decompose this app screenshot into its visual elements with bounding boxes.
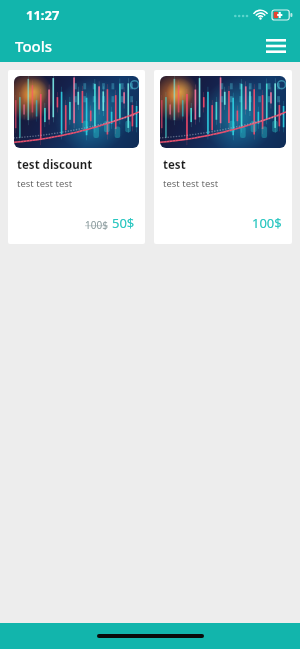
button[interactable]: test discount bbox=[8, 70, 145, 244]
button[interactable]: test bbox=[154, 70, 292, 244]
staticText: test test test bbox=[163, 177, 219, 190]
staticText: 100$ bbox=[85, 218, 108, 232]
staticText: test test test bbox=[17, 177, 73, 190]
staticText: Tools bbox=[15, 36, 53, 56]
staticText: test discount bbox=[17, 157, 93, 173]
staticText: 50$ bbox=[112, 214, 135, 232]
staticText: test bbox=[163, 157, 186, 173]
staticText: 11:27 bbox=[26, 6, 60, 24]
staticText: 100$ bbox=[252, 214, 282, 232]
button[interactable]: Open navigation menu bbox=[260, 30, 292, 62]
